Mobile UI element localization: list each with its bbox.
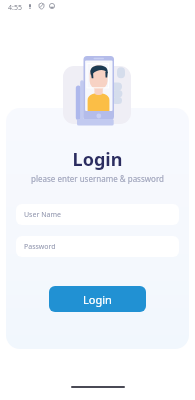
- staticText: please enter username & password: [6, 173, 189, 184]
- staticText: User Name: [24, 210, 61, 220]
- button[interactable]: Password: [16, 236, 179, 257]
- staticText: Login: [83, 292, 112, 307]
- staticText: Password: [24, 242, 56, 252]
- button[interactable]: Login: [49, 286, 146, 312]
- button[interactable]: User Name: [16, 204, 179, 225]
- staticText: Login: [6, 147, 189, 172]
- staticText: 4:55: [8, 3, 22, 13]
